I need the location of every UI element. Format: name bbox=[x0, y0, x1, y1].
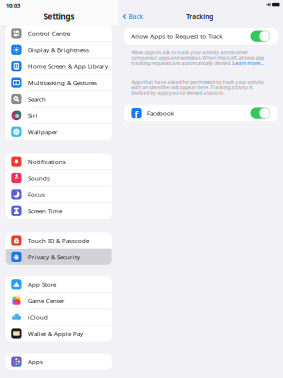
button[interactable]: Focus bbox=[6, 186, 112, 202]
button[interactable]: Wallpaper bbox=[6, 124, 112, 140]
button[interactable]: Siri bbox=[6, 107, 112, 123]
button[interactable]: Privacy & Security bbox=[6, 249, 112, 265]
staticText: Settings bbox=[43, 11, 74, 22]
button[interactable]: Screen Time bbox=[6, 203, 112, 219]
staticText: Multitasking & Gestures bbox=[28, 78, 97, 87]
button[interactable]: App Store bbox=[6, 276, 112, 292]
staticText: f bbox=[135, 108, 139, 121]
staticText: Allow Apps to Request to Track bbox=[131, 32, 222, 40]
staticText: Back bbox=[128, 12, 142, 21]
staticText: iCloud bbox=[28, 313, 48, 321]
staticText: Wallpaper bbox=[28, 128, 58, 136]
button[interactable]: Display & Brightness bbox=[6, 42, 112, 58]
button[interactable]: Game Center bbox=[6, 293, 112, 309]
staticText: Control Centre bbox=[28, 29, 70, 38]
staticText: 10:03 bbox=[6, 2, 20, 9]
button[interactable]: Apps bbox=[6, 354, 112, 369]
button[interactable]: Wallet & Apple Pay bbox=[6, 326, 112, 341]
staticText: Sounds bbox=[28, 174, 50, 182]
button[interactable]: f bbox=[118, 105, 283, 121]
staticText: Siri bbox=[28, 111, 38, 120]
staticText: Privacy & Security bbox=[28, 253, 80, 261]
button[interactable]: Home Screen & App Library bbox=[6, 58, 112, 74]
button[interactable]: Allow Apps to Request to Track bbox=[118, 28, 283, 44]
staticText: Home Screen & App Library bbox=[28, 62, 108, 70]
staticText: Screen Time bbox=[28, 207, 62, 215]
button[interactable]: iCloud bbox=[6, 309, 112, 325]
staticText: Wallet & Apple Pay bbox=[28, 329, 83, 338]
button[interactable]: Touch ID & Passcode bbox=[6, 233, 112, 248]
staticText: Touch ID & Passcode bbox=[28, 236, 89, 245]
button[interactable]: Sounds bbox=[6, 170, 112, 186]
staticText: Display & Brightness bbox=[28, 46, 89, 54]
button[interactable]: Multitasking & Gestures bbox=[6, 75, 112, 90]
button[interactable]: Notifications bbox=[6, 154, 112, 169]
staticText: Game Center bbox=[28, 296, 65, 305]
staticText: Apps bbox=[28, 357, 43, 366]
staticText: Allow apps to ask to track your activity… bbox=[131, 50, 264, 66]
staticText: Facebook bbox=[147, 109, 174, 117]
button[interactable]: Back bbox=[118, 9, 142, 23]
staticText: Notifications bbox=[28, 157, 66, 166]
staticText: App Store bbox=[28, 280, 56, 288]
staticText: Search bbox=[28, 95, 46, 103]
staticText: Apps that have asked for permission to t… bbox=[131, 79, 264, 95]
button[interactable]: Search bbox=[6, 91, 112, 107]
button[interactable]: Control Centre bbox=[6, 25, 112, 41]
staticText: Tracking bbox=[186, 12, 213, 21]
staticText: Focus bbox=[28, 190, 45, 199]
